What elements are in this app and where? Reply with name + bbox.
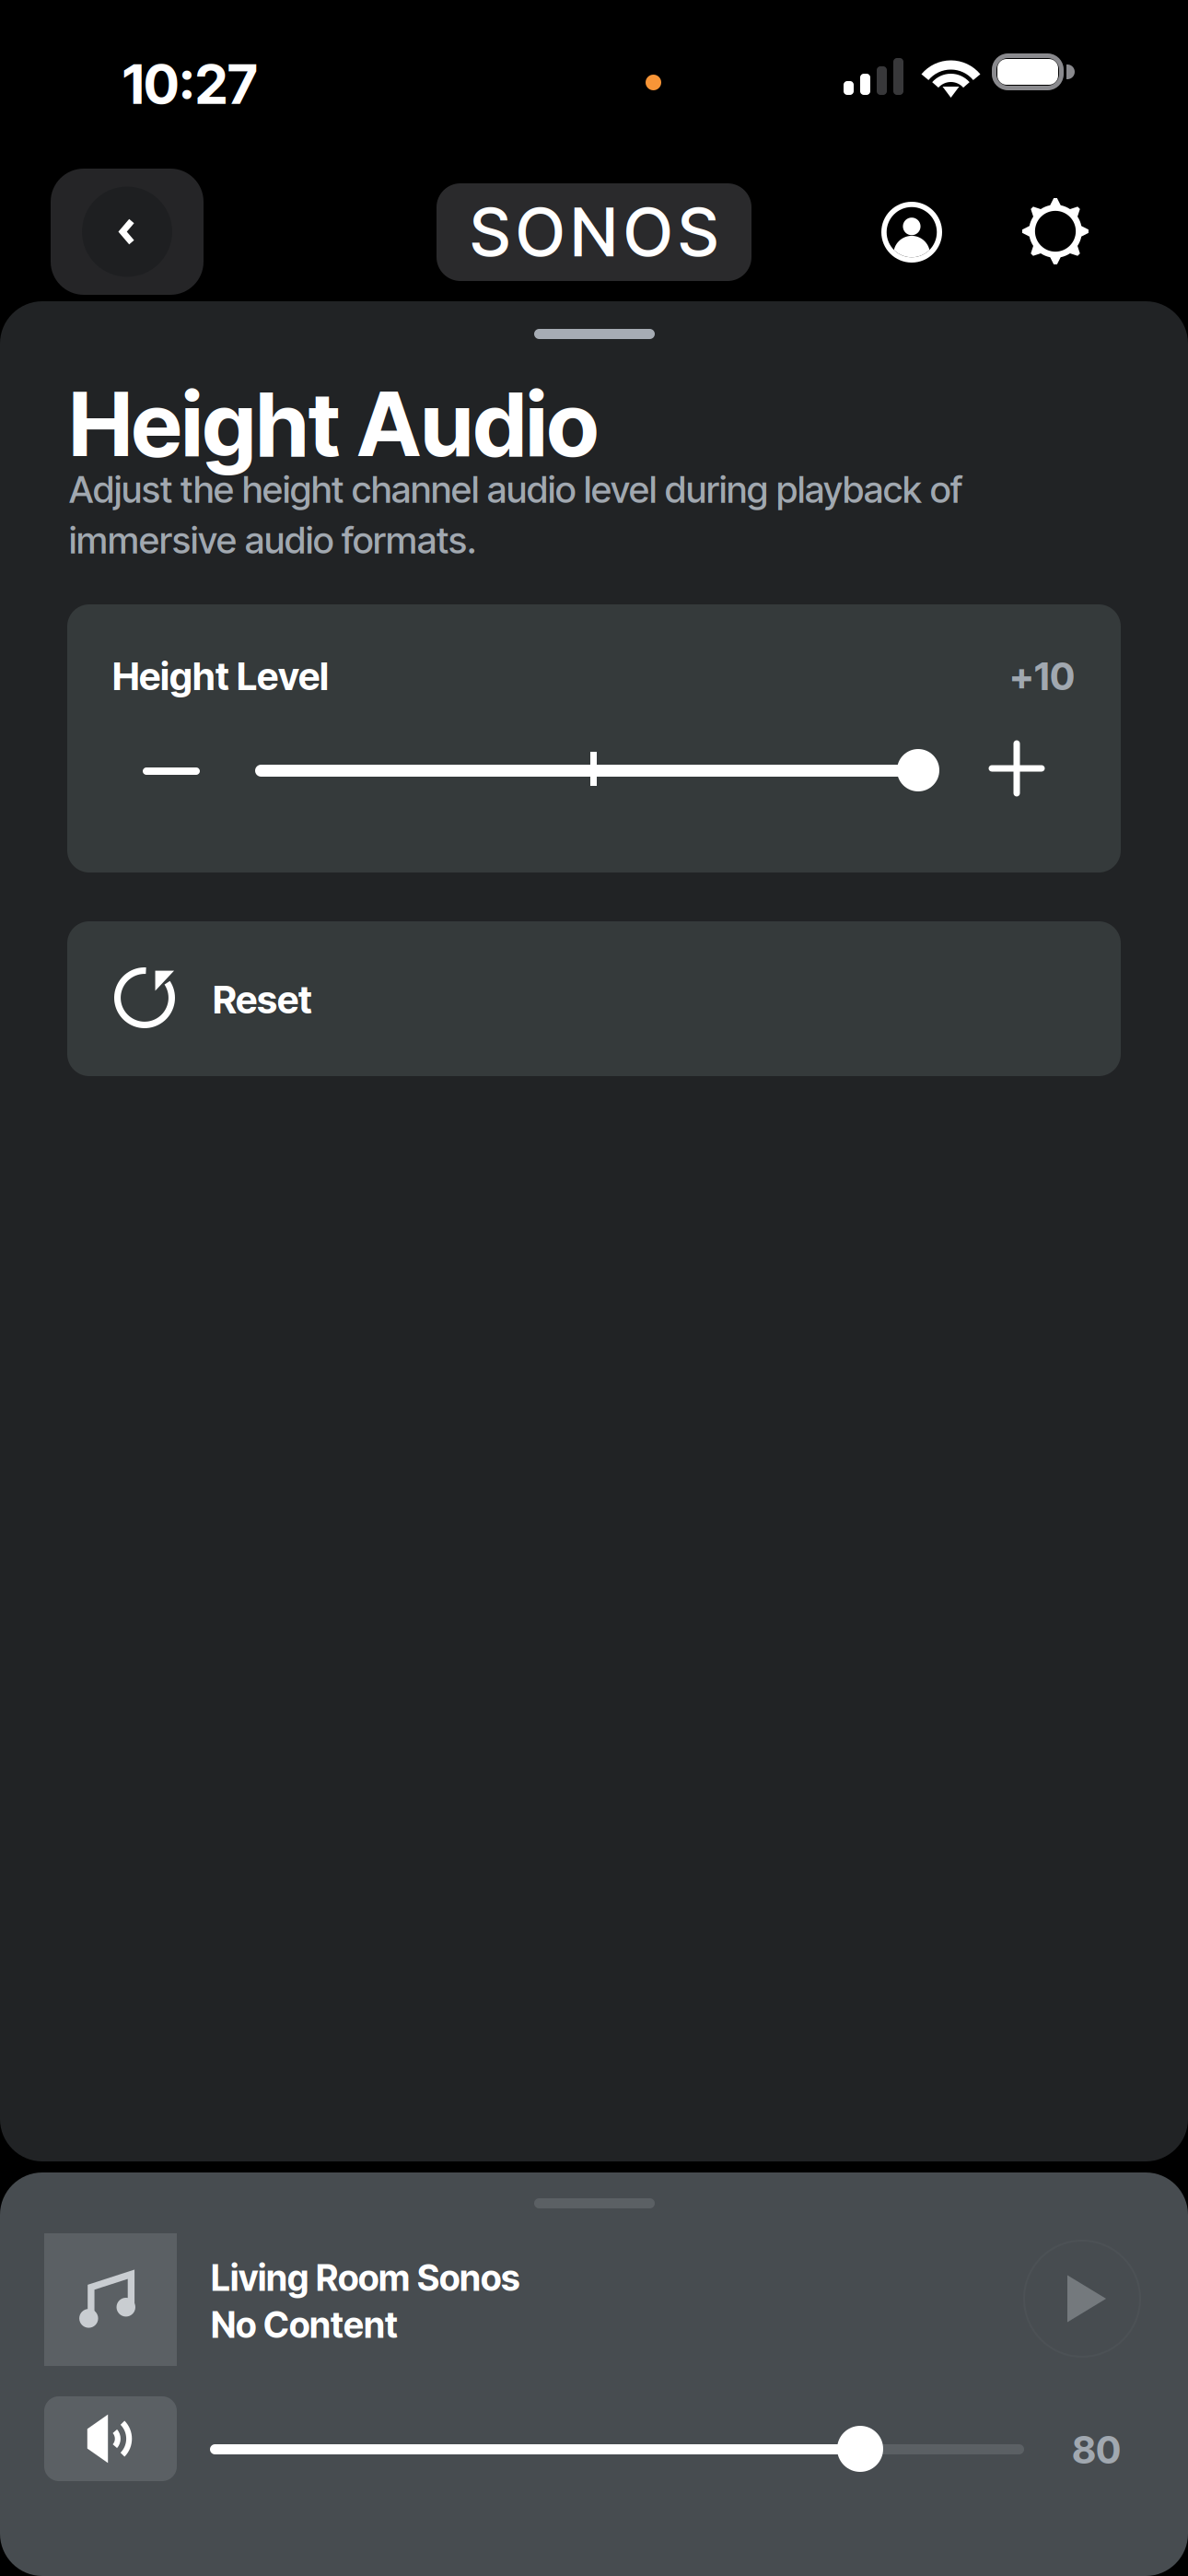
staticText: O — [624, 192, 672, 272]
button[interactable]: Settings — [1014, 190, 1097, 273]
staticText: Height Audio — [69, 370, 599, 477]
button[interactable]: Decrease height level — [84, 730, 259, 813]
button[interactable]: Account — [870, 191, 953, 274]
button[interactable]: Increase height level — [943, 727, 1090, 810]
button[interactable]: Living Room Sonos — [0, 2172, 1188, 2375]
staticText: immersive audio formats. — [69, 518, 476, 562]
staticText: O — [516, 192, 564, 272]
button[interactable]: S — [437, 183, 751, 281]
staticText: Living Room Sonos — [211, 2256, 519, 2299]
staticText: N — [571, 192, 617, 272]
staticText: Reset — [213, 977, 312, 1023]
staticText: S — [678, 192, 718, 272]
staticText: 80 — [1072, 2427, 1121, 2473]
staticText: S — [470, 192, 510, 272]
staticText: Height Level — [112, 653, 329, 699]
staticText: +10 — [1009, 653, 1075, 699]
staticText: 10:27 — [122, 52, 257, 117]
staticText: No Content — [211, 2303, 398, 2346]
staticText: Adjust the height channel audio level du… — [69, 467, 962, 512]
button[interactable]: Back — [51, 169, 204, 295]
button[interactable]: Volume — [44, 2396, 177, 2481]
button[interactable]: Reset — [67, 921, 1121, 1076]
